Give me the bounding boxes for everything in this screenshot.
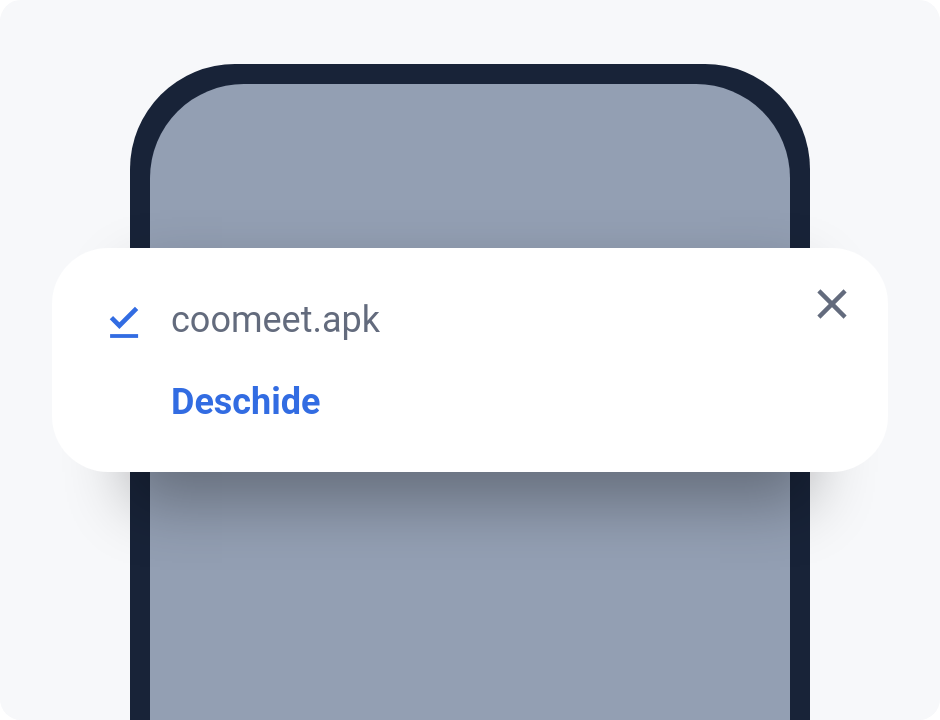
button[interactable]: Close — [804, 276, 860, 332]
button[interactable]: Deschide — [171, 381, 321, 423]
staticText: Deschide — [171, 381, 321, 423]
staticText: coomeet.apk — [171, 299, 380, 341]
